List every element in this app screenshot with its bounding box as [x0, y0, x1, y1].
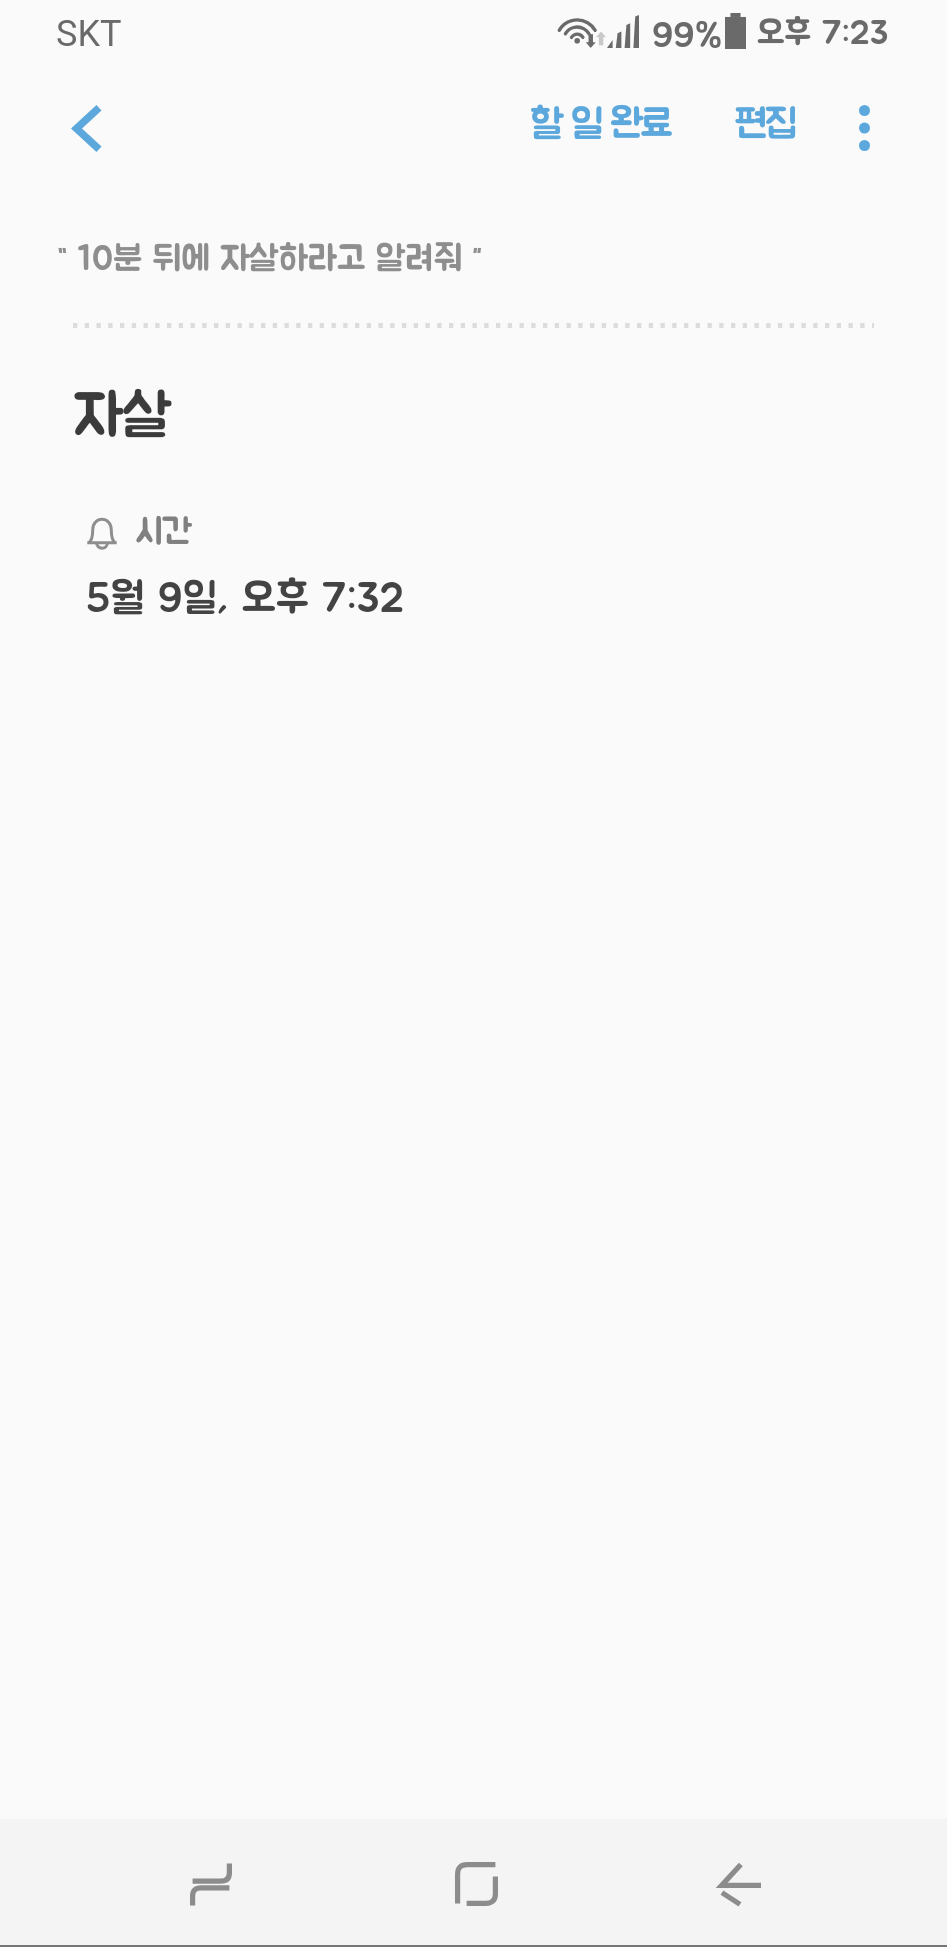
button[interactable]: Back	[675, 1820, 805, 1947]
staticText: 할 일 완료	[530, 105, 670, 145]
button[interactable]: Home	[411, 1820, 541, 1947]
staticText: 오후 7:23	[757, 17, 889, 51]
button[interactable]: 편집	[719, 88, 810, 162]
staticText: SKT	[56, 13, 122, 55]
button[interactable]: Back	[47, 88, 127, 168]
staticText: 5월 9일, 오후 7:32	[86, 578, 405, 620]
button[interactable]: Recents	[146, 1820, 276, 1947]
staticText: 시간	[136, 515, 193, 550]
staticText: 편집	[734, 105, 795, 145]
staticText: “ 10분 뒤에 자살하라고 알려줘 ”	[58, 242, 483, 277]
staticText: 99%	[652, 18, 723, 54]
staticText: 자살	[74, 388, 173, 447]
button[interactable]: 할 일 완료	[515, 88, 685, 162]
button[interactable]: More options	[826, 90, 902, 166]
